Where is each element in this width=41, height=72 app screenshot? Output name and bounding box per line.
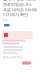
staticText: 주문 내역은 마이페이지에서 확인	[3, 7, 37, 17]
staticText: 주문	[2, 18, 8, 22]
staticText: 결제가 정상적으로 완료되었습니다.	[3, 0, 36, 7]
staticText: 결제 금액 확인	[3, 55, 23, 59]
button[interactable]	[22, 61, 31, 65]
